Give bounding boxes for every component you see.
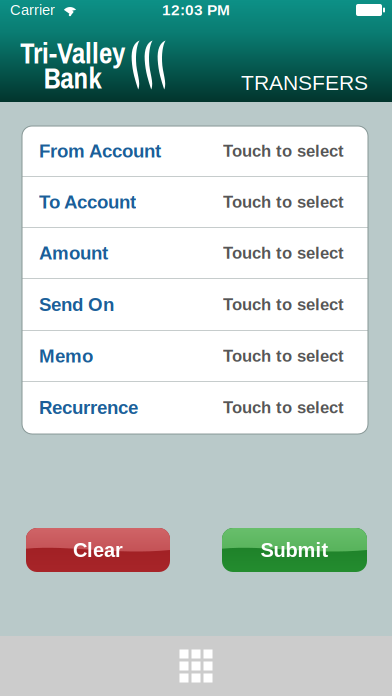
staticText: To Account [39,192,136,212]
staticText: Touch to select [223,244,344,262]
staticText: Bank [43,58,101,98]
staticText: Send On [39,294,114,315]
button[interactable]: Amount [22,228,368,278]
staticText: Touch to select [223,142,344,160]
staticText: Clear [73,539,123,561]
button[interactable]: Recurrence [22,382,368,433]
staticText: Touch to select [223,347,344,365]
button[interactable]: Clear [26,528,170,572]
staticText: 12:03 PM [162,1,230,19]
staticText: Touch to select [223,193,344,211]
button[interactable]: To Account [22,177,368,227]
staticText: Tri-Valley [20,33,125,73]
staticText: Recurrence [39,397,138,418]
staticText: TRANSFERS [241,71,368,94]
staticText: From Account [39,141,161,161]
button[interactable]: Send On [22,279,368,330]
button[interactable]: From Account [22,126,368,176]
button[interactable]: Submit [222,528,367,572]
button[interactable]: Menu [165,636,227,696]
staticText: Touch to select [223,295,344,314]
staticText: Touch to select [223,398,344,417]
staticText: Carrier [10,2,55,18]
staticText: Submit [260,539,328,561]
staticText: Memo [39,346,93,366]
staticText: Amount [39,243,108,263]
button[interactable]: Memo [22,331,368,381]
